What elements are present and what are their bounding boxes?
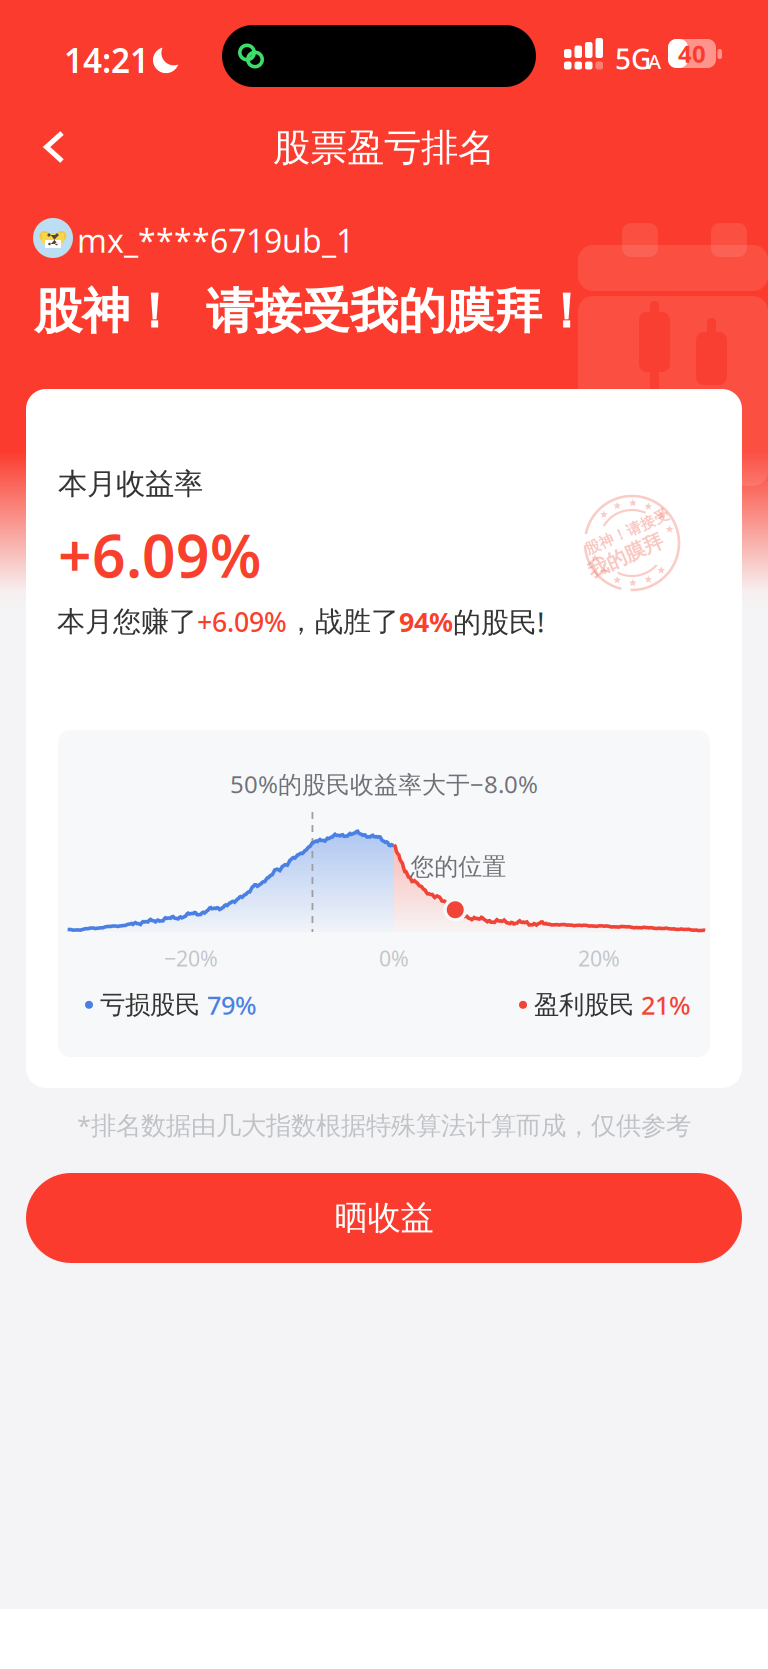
staticText: 亏损股民 (100, 989, 200, 1020)
staticText: 94% (399, 604, 453, 639)
staticText: mx_****6719ub_1 (77, 219, 354, 261)
staticText: 股票盈亏排名 (273, 125, 495, 171)
staticText: −20% (164, 944, 218, 972)
staticText: 50%的股民收益率大于−8.0% (230, 768, 538, 800)
staticText: 晒收益 (334, 1197, 433, 1238)
button[interactable]: 晒收益 (26, 1173, 742, 1263)
staticText: 21% (641, 988, 691, 1022)
staticText: 盈利股民 (534, 989, 634, 1020)
staticText: *排名数据由几大指数根据特殊算法计算而成，仅供参考 (77, 1108, 691, 1142)
staticText: +6.09% (197, 604, 287, 639)
staticText: +6.09% (58, 516, 261, 594)
staticText: 79% (207, 988, 257, 1022)
staticText: A (648, 48, 661, 75)
staticText: 我的膜拜 (581, 540, 661, 564)
staticText: 股神！请接受 (587, 522, 677, 540)
staticText: 40 (678, 38, 706, 69)
staticText: 本月您赚了 (57, 604, 197, 639)
button[interactable]: Back (22, 115, 87, 179)
staticText: 0% (379, 944, 409, 972)
staticText: 的股民! (453, 603, 545, 640)
staticText: 14:21 (64, 38, 149, 82)
staticText: 5G (615, 40, 651, 77)
staticText: 您的位置 (410, 852, 506, 881)
staticText: ，战胜了 (287, 604, 399, 639)
staticText: 20% (578, 944, 620, 972)
staticText: 本月收益率 (58, 466, 203, 502)
staticText: 股神！ 请接受我的膜拜！ (34, 282, 590, 341)
